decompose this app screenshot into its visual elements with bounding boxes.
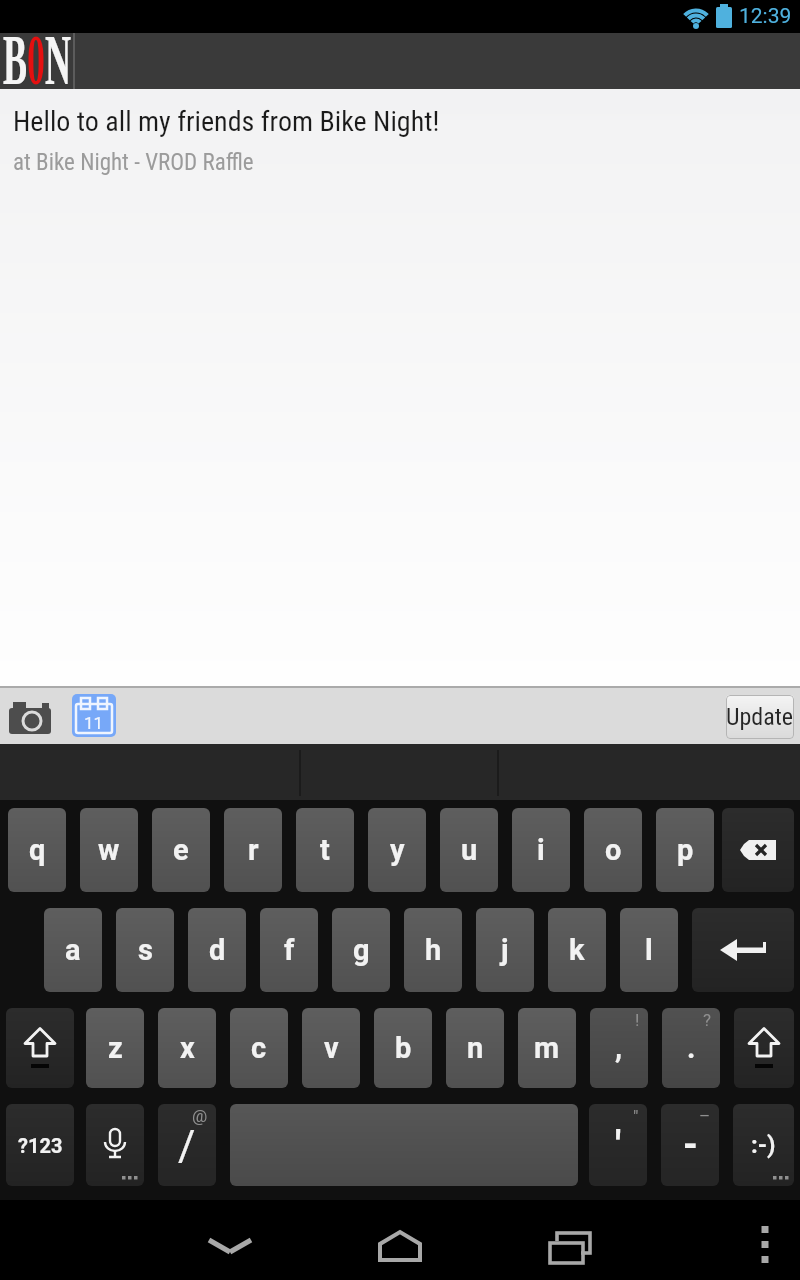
- button[interactable]: l: [620, 908, 678, 992]
- staticText: ,: [615, 1031, 623, 1065]
- staticText: o: [605, 833, 622, 867]
- button[interactable]: h: [404, 908, 462, 992]
- staticText: .: [687, 1031, 696, 1065]
- staticText: :-): [751, 1131, 776, 1159]
- button[interactable]: [6, 1008, 74, 1088]
- button[interactable]: f: [260, 908, 318, 992]
- button[interactable]: g: [332, 908, 390, 992]
- button[interactable]: [692, 908, 794, 992]
- staticText: g: [353, 933, 370, 967]
- button[interactable]: :-): [733, 1104, 794, 1186]
- button[interactable]: ,: [590, 1008, 648, 1088]
- button[interactable]: m: [518, 1008, 576, 1088]
- staticText: ?123: [18, 1134, 63, 1157]
- staticText: r: [248, 833, 259, 867]
- button[interactable]: j: [476, 908, 534, 992]
- staticText: l: [645, 933, 653, 967]
- staticText: /: [178, 1121, 196, 1170]
- staticText: j: [501, 933, 509, 967]
- staticText: y: [390, 833, 405, 867]
- staticText: z: [108, 1031, 123, 1065]
- staticText: 12:39: [739, 4, 792, 29]
- button[interactable]: B0N: [0, 33, 74, 89]
- button[interactable]: [734, 1008, 794, 1088]
- button[interactable]: e: [152, 808, 210, 892]
- staticText: –: [699, 1106, 711, 1126]
- button[interactable]: [86, 1104, 144, 1186]
- button[interactable]: Update: [726, 695, 794, 739]
- staticText: n: [467, 1031, 484, 1065]
- staticText: p: [677, 833, 694, 867]
- staticText: ': [615, 1123, 622, 1168]
- button[interactable]: [195, 1226, 265, 1266]
- button[interactable]: u: [440, 808, 498, 892]
- button[interactable]: ': [589, 1104, 647, 1186]
- button[interactable]: -: [661, 1104, 719, 1186]
- staticText: x: [180, 1031, 195, 1065]
- staticText: t: [320, 833, 330, 867]
- button[interactable]: y: [368, 808, 426, 892]
- staticText: k: [569, 933, 585, 967]
- staticText: w: [98, 833, 120, 867]
- button[interactable]: [535, 1226, 605, 1266]
- button[interactable]: a: [44, 908, 102, 992]
- staticText: e: [173, 833, 189, 867]
- staticText: 11: [84, 713, 104, 733]
- button[interactable]: q: [8, 808, 66, 892]
- button[interactable]: n: [446, 1008, 504, 1088]
- button[interactable]: b: [374, 1008, 432, 1088]
- staticText: Hello to all my friends from Bike Night!: [13, 105, 440, 138]
- button[interactable]: 11: [72, 694, 116, 737]
- staticText: c: [251, 1031, 267, 1065]
- staticText: !: [635, 1010, 640, 1030]
- staticText: m: [534, 1031, 560, 1065]
- button[interactable]: o: [584, 808, 642, 892]
- staticText: a: [65, 933, 81, 967]
- staticText: u: [461, 833, 478, 867]
- button[interactable]: k: [548, 908, 606, 992]
- staticText: d: [209, 933, 226, 967]
- button[interactable]: [365, 1226, 435, 1266]
- button[interactable]: [745, 1220, 785, 1272]
- button[interactable]: w: [80, 808, 138, 892]
- staticText: f: [284, 933, 295, 967]
- button[interactable]: v: [302, 1008, 360, 1088]
- button[interactable]: s: [116, 908, 174, 992]
- staticText: ": [633, 1106, 639, 1126]
- staticText: at Bike Night - VROD Raffle: [13, 149, 254, 176]
- staticText: ?: [703, 1010, 712, 1030]
- staticText: h: [425, 933, 442, 967]
- button[interactable]: z: [86, 1008, 144, 1088]
- staticText: @: [192, 1106, 208, 1126]
- staticText: Update: [726, 703, 794, 731]
- staticText: b: [395, 1031, 412, 1065]
- button[interactable]: /: [158, 1104, 216, 1186]
- button[interactable]: r: [224, 808, 282, 892]
- staticText: q: [29, 833, 46, 867]
- button[interactable]: x: [158, 1008, 216, 1088]
- button[interactable]: .: [662, 1008, 720, 1088]
- staticText: i: [537, 833, 545, 867]
- button[interactable]: i: [512, 808, 570, 892]
- button[interactable]: ?123: [6, 1104, 74, 1186]
- staticText: s: [138, 933, 153, 967]
- button[interactable]: p: [656, 808, 714, 892]
- staticText: v: [324, 1031, 339, 1065]
- staticText: B0N: [3, 20, 40, 76]
- button[interactable]: d: [188, 908, 246, 992]
- button[interactable]: t: [296, 808, 354, 892]
- button[interactable]: [6, 693, 56, 737]
- button[interactable]: [722, 808, 794, 892]
- button[interactable]: Hello to all my friends from Bike Night!: [0, 89, 800, 686]
- button[interactable]: [230, 1104, 578, 1186]
- button[interactable]: c: [230, 1008, 288, 1088]
- staticText: -: [683, 1123, 698, 1168]
